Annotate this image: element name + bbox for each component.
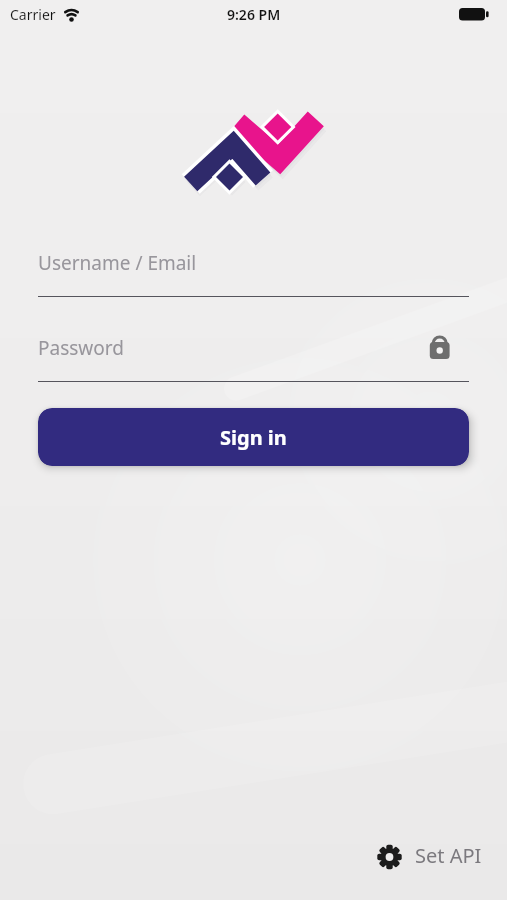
- button[interactable]: Password: [38, 325, 469, 382]
- staticText: Carrier: [10, 5, 56, 24]
- staticText: Set API: [415, 842, 482, 869]
- staticText: Password: [38, 335, 124, 361]
- button[interactable]: Username / Email: [38, 240, 469, 297]
- button[interactable]: Set API: [376, 840, 482, 870]
- button[interactable]: Sign in: [38, 408, 469, 466]
- staticText: 9:26 PM: [227, 5, 281, 24]
- staticText: Sign in: [220, 424, 287, 451]
- staticText: Username / Email: [38, 250, 197, 276]
